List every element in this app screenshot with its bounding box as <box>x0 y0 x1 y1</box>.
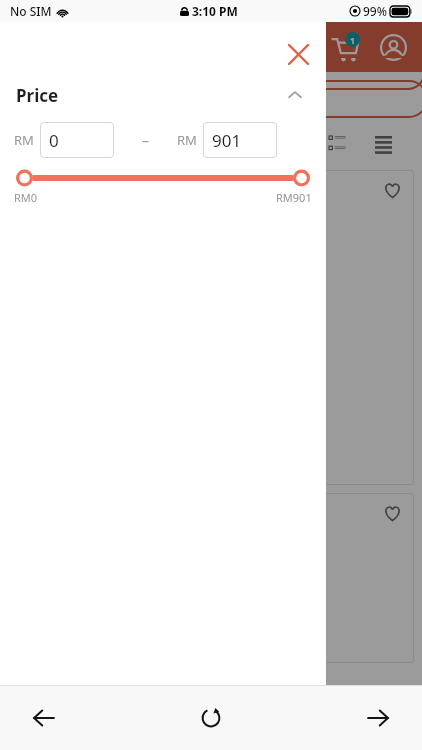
staticText: RM0 <box>14 190 38 205</box>
button[interactable]: Price <box>0 78 326 112</box>
button[interactable]: Price range slider <box>16 168 310 188</box>
button[interactable]: Close <box>282 38 314 70</box>
staticText: No SIM <box>10 3 52 19</box>
button[interactable]: Account <box>374 28 412 66</box>
button[interactable]: Reload <box>187 694 235 742</box>
button[interactable]: Favourite <box>8 170 414 485</box>
button[interactable]: List view <box>368 129 398 159</box>
staticText: 901 <box>212 129 242 152</box>
staticText: 0 <box>49 129 59 152</box>
staticText: 1 <box>350 34 356 46</box>
button[interactable]: Favourite <box>380 501 404 525</box>
button[interactable]: Favourite <box>380 178 404 202</box>
button[interactable]: Cart <box>326 28 364 66</box>
staticText: 99% <box>363 3 387 19</box>
button[interactable]: Back <box>20 694 68 742</box>
staticText: RM901 <box>276 190 312 205</box>
button[interactable]: 0 <box>40 122 114 158</box>
staticText: RM <box>177 131 197 149</box>
button[interactable]: 901 <box>203 122 277 158</box>
staticText: 3:10 PM <box>192 3 238 19</box>
button[interactable]: Grid view <box>322 129 352 159</box>
staticText: RM <box>14 131 34 149</box>
button[interactable]: Forward <box>354 694 402 742</box>
button[interactable]: Favourite <box>8 493 414 663</box>
staticText: Price <box>16 84 59 107</box>
staticText: – <box>142 131 149 150</box>
